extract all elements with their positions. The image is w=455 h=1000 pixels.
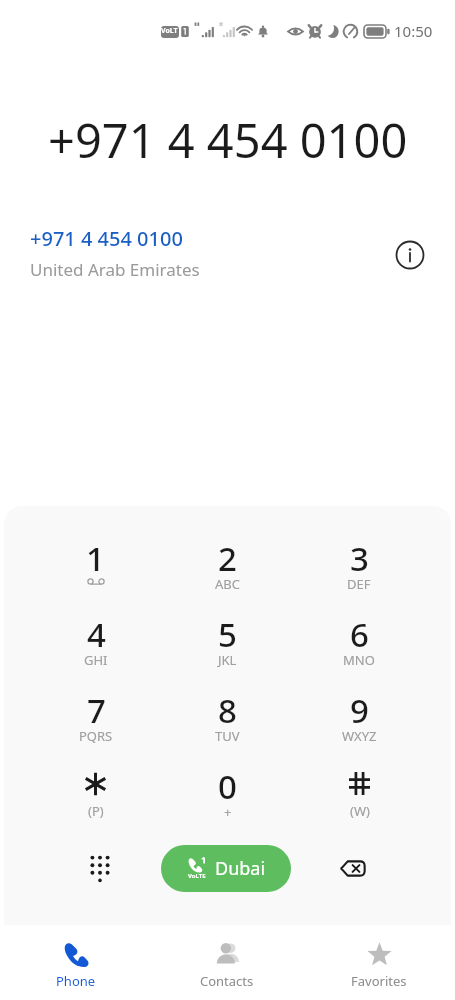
button[interactable]: 2 [161,536,293,612]
button[interactable]: 0 [161,764,293,840]
staticText: PQRS [79,727,113,745]
staticText: WXYZ [342,727,377,745]
staticText: 3 [350,536,369,581]
staticText: Favorites [351,972,407,990]
button[interactable]: Call details [387,232,432,277]
button[interactable]: VoLTE [161,845,291,892]
staticText: 1 [86,536,105,581]
staticText: Contacts [200,972,254,990]
button[interactable]: (W) [293,764,425,840]
staticText: 8 [218,688,237,733]
staticText: 7 [87,688,106,733]
button[interactable]: Favorites [303,925,455,1000]
staticText: (W) [350,802,370,820]
button[interactable]: Backspace [291,840,414,897]
staticText: 0 [218,764,237,809]
button[interactable]: (P) [30,764,161,840]
button[interactable]: Contacts [151,925,303,1000]
staticText: 9 [350,688,369,733]
staticText: United Arab Emirates [30,258,200,281]
button[interactable]: 9 [293,688,425,764]
button[interactable]: Hide dialpad [38,840,161,897]
button[interactable]: 5 [161,612,293,688]
staticText: +971 4 454 0100 [48,108,408,172]
staticText: + [224,803,232,821]
staticText: +971 4 454 0100 [30,225,183,252]
staticText: DEF [347,575,371,593]
button[interactable]: 7 [30,688,161,764]
staticText: ABC [215,575,240,593]
staticText: 2 [218,536,237,581]
button[interactable]: Phone [0,925,151,1000]
staticText: JKL [218,651,237,669]
staticText: 10:50 [394,21,433,41]
staticText: (P) [88,802,104,820]
button[interactable]: 4 [30,612,161,688]
staticText: 4 [87,612,106,657]
button[interactable]: 8 [161,688,293,764]
staticText: Phone [56,972,96,990]
staticText: MNO [343,651,375,669]
button[interactable]: 3 [293,536,425,612]
staticText: TUV [215,727,240,745]
staticText: 5 [218,612,237,657]
staticText: VoLTE [161,26,179,38]
button[interactable]: 1 [30,536,161,612]
staticText: Dubai [215,856,266,881]
staticText: VoLTE [188,872,206,880]
button[interactable]: 6 [293,612,425,688]
staticText: GHI [84,651,108,669]
staticText: 6 [350,612,369,657]
